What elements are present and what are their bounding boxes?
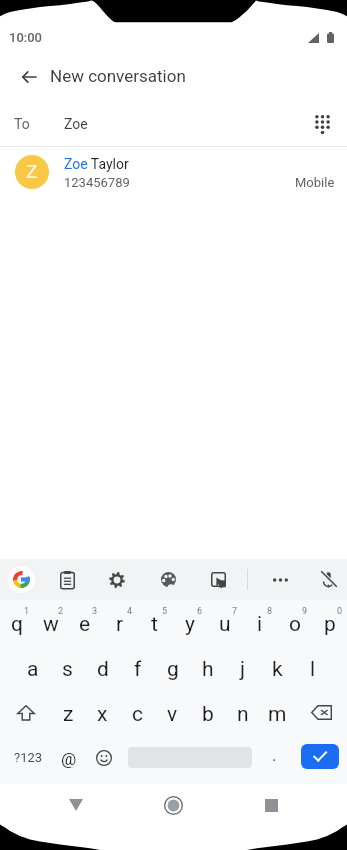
button[interactable]: z [51, 690, 85, 735]
button[interactable]: e [68, 600, 102, 645]
staticText: 10:00 [9, 30, 42, 45]
staticText: z [63, 702, 74, 727]
button[interactable]: Settings [97, 559, 137, 600]
button[interactable]: n [225, 690, 260, 735]
staticText: 123456789 [64, 175, 130, 190]
staticText: @ [61, 749, 77, 769]
staticText: j [240, 657, 246, 682]
staticText: x [97, 702, 108, 727]
button[interactable]: m [260, 690, 295, 735]
button[interactable]: b [190, 690, 225, 735]
staticText: l [310, 657, 316, 682]
staticText: a [27, 657, 39, 682]
staticText: f [134, 657, 142, 682]
button[interactable]: Emoji [87, 735, 121, 780]
button[interactable]: c [120, 690, 155, 735]
button[interactable]: Clipboard [47, 559, 87, 600]
button[interactable]: Z [0, 147, 347, 201]
staticText: ?123 [14, 750, 43, 765]
staticText: w [43, 612, 59, 637]
staticText: 8 [267, 606, 273, 617]
button[interactable]: a [16, 645, 50, 690]
button[interactable]: Backspace [295, 690, 347, 735]
button[interactable]: r [102, 600, 137, 645]
button[interactable]: t [137, 600, 172, 645]
button[interactable]: Dialpad [300, 102, 344, 146]
button[interactable]: More options [260, 559, 300, 600]
button[interactable]: w [34, 600, 68, 645]
staticText: q [11, 612, 23, 637]
staticText: 9 [302, 606, 308, 617]
button[interactable]: i [242, 600, 277, 645]
staticText: p [324, 612, 336, 637]
staticText: Zoe [64, 116, 88, 132]
staticText: b [202, 702, 214, 727]
button[interactable]: Recent apps [249, 783, 293, 827]
staticText: 6 [197, 606, 203, 617]
button[interactable]: p [312, 600, 347, 645]
staticText: h [202, 657, 214, 682]
button[interactable]: g [155, 645, 190, 690]
button[interactable]: Shift [0, 690, 51, 735]
button[interactable]: Back [54, 783, 98, 827]
staticText: y [185, 612, 195, 637]
button[interactable]: @ [52, 735, 86, 780]
button[interactable]: q [0, 600, 34, 645]
button[interactable]: x [85, 690, 120, 735]
staticText: Zoe Taylor [64, 156, 129, 172]
button[interactable]: v [155, 690, 190, 735]
staticText: New conversation [50, 66, 186, 86]
button[interactable]: y [172, 600, 207, 645]
button[interactable]: o [277, 600, 312, 645]
button[interactable]: Back [7, 55, 51, 99]
staticText: m [268, 702, 287, 727]
button[interactable]: . [258, 735, 290, 780]
staticText: . [272, 745, 277, 765]
button[interactable]: f [120, 645, 155, 690]
button[interactable]: j [225, 645, 260, 690]
button[interactable]: Google [1, 559, 41, 600]
button[interactable]: Voice input disabled [308, 559, 347, 600]
staticText: 5 [162, 606, 168, 617]
staticText: 4 [127, 606, 133, 617]
staticText: 3 [92, 606, 98, 617]
staticText: c [132, 702, 143, 727]
button[interactable]: k [260, 645, 295, 690]
staticText: e [79, 612, 91, 637]
staticText: 0 [337, 606, 343, 617]
staticText: d [97, 657, 109, 682]
staticText: i [257, 612, 263, 637]
button[interactable]: Send [301, 744, 339, 769]
button[interactable]: Themes [148, 559, 188, 600]
button[interactable]: d [85, 645, 120, 690]
button[interactable]: l [295, 645, 330, 690]
staticText: k [272, 657, 283, 682]
staticText: u [219, 612, 231, 637]
staticText: n [237, 702, 249, 727]
staticText: r [116, 612, 124, 637]
button[interactable]: u [207, 600, 242, 645]
button[interactable]: ?123 [6, 735, 50, 780]
button[interactable]: Home [151, 783, 195, 827]
staticText: g [167, 657, 179, 682]
staticText: s [62, 657, 73, 682]
staticText: To [14, 116, 30, 132]
staticText: 2 [58, 606, 64, 617]
staticText: Mobile [295, 175, 335, 190]
staticText: v [167, 702, 178, 727]
button[interactable]: s [50, 645, 85, 690]
staticText: Z [26, 160, 38, 182]
button[interactable]: h [190, 645, 225, 690]
staticText: 7 [232, 606, 238, 617]
staticText: t [151, 612, 158, 637]
button[interactable]: Floating keyboard [198, 559, 238, 600]
staticText: o [289, 612, 301, 637]
staticText: 1 [24, 606, 30, 617]
